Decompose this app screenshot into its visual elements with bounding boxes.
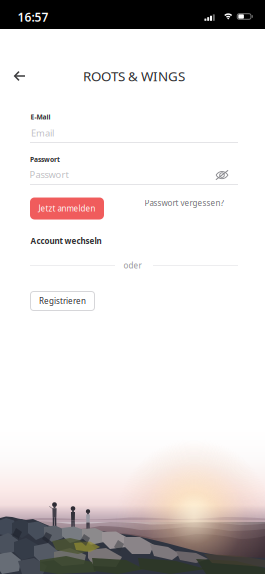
staticText: Jetzt anmelden	[38, 203, 95, 214]
staticText: Passwort	[30, 155, 60, 164]
button[interactable]: Jetzt anmelden	[30, 197, 104, 219]
staticText: oder	[123, 260, 141, 271]
staticText: Registrieren	[39, 296, 86, 306]
button[interactable]: Back	[3, 61, 37, 91]
button[interactable]: Account wechseln	[29, 233, 103, 249]
staticText: Email	[31, 127, 54, 139]
staticText: ROOTS & WINGS	[83, 67, 185, 85]
button[interactable]: Passwort vergessen?	[142, 195, 226, 211]
button[interactable]: Show password	[209, 164, 235, 186]
staticText: E-Mail	[30, 113, 50, 121]
staticText: Account wechseln	[30, 236, 101, 246]
button[interactable]: Registrieren	[30, 291, 95, 311]
staticText: 16:57	[17, 9, 48, 25]
staticText: Passwort	[29, 168, 68, 181]
staticText: Passwort vergessen?	[144, 198, 223, 208]
